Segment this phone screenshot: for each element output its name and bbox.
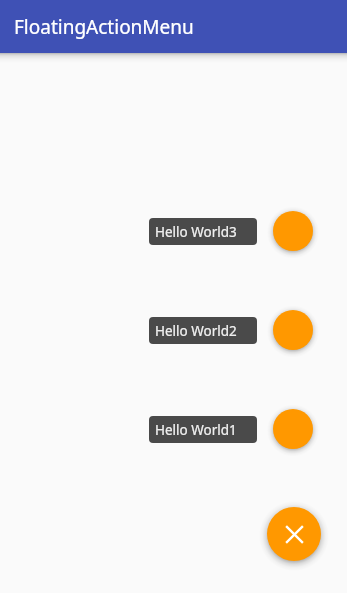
staticText: Hello World1 <box>155 421 237 439</box>
button[interactable]: Hello World1 <box>149 416 257 443</box>
button[interactable]: Hello World2 <box>149 317 257 344</box>
button[interactable]: Close menu <box>267 507 321 561</box>
button[interactable]: Hello World3 <box>149 218 257 245</box>
staticText: FloatingActionMenu <box>14 14 194 40</box>
button[interactable]: Hello World1 <box>273 409 313 449</box>
staticText: Hello World2 <box>155 322 237 340</box>
button[interactable]: Hello World2 <box>273 310 313 350</box>
staticText: Hello World3 <box>155 223 237 241</box>
button[interactable]: Hello World3 <box>273 211 313 251</box>
